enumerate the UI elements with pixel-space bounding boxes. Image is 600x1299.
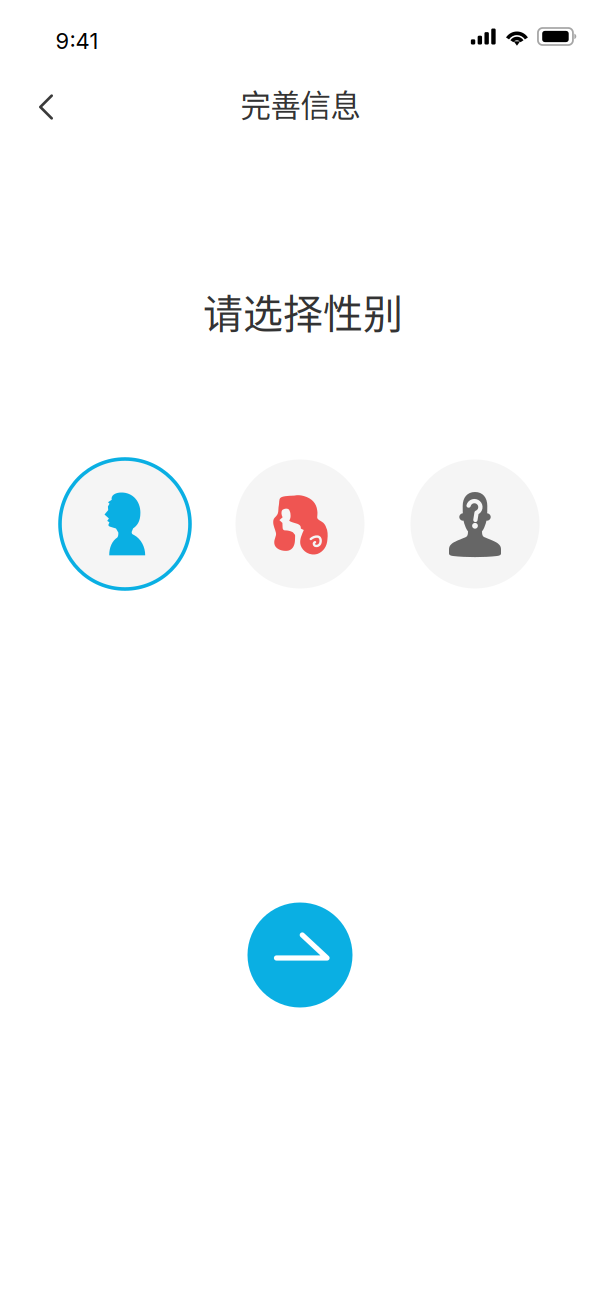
staticText: 完善信息 [240,81,360,125]
button[interactable]: Female [233,457,367,591]
staticText: 9:41 [55,28,98,54]
button[interactable]: Next [247,902,352,1007]
button[interactable]: Back [17,78,74,136]
staticText: 请选择性别 [203,282,403,340]
button[interactable]: Male [58,457,192,591]
button[interactable]: Unknown [408,457,542,591]
